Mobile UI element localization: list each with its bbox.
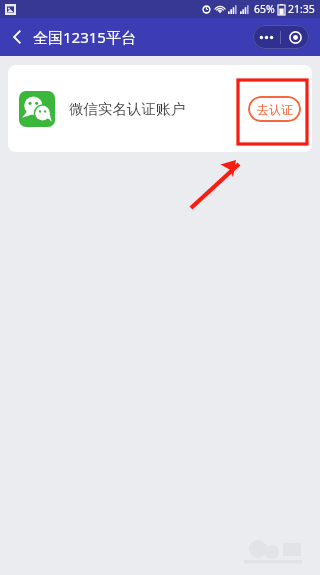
staticText: 去认证 [257, 102, 293, 117]
staticText: 21:35 [288, 2, 315, 16]
button[interactable]: More [253, 25, 280, 49]
staticText: 65% [254, 2, 275, 16]
button[interactable]: Close [281, 25, 309, 49]
button[interactable]: 微信实名认证账户 [8, 65, 312, 152]
button[interactable]: Back [10, 25, 25, 49]
button[interactable]: 去认证 [248, 96, 301, 122]
staticText: 微信实名认证账户 [69, 100, 185, 118]
staticText: 全国12315平台 [33, 27, 136, 47]
